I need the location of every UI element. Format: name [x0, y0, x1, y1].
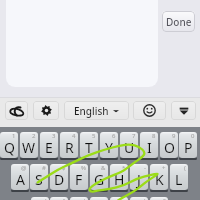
button[interactable]: & — [90, 164, 108, 190]
staticText: A — [16, 170, 25, 189]
button[interactable]: English — [64, 101, 129, 120]
staticText: 9 — [172, 132, 176, 140]
staticText: Q — [4, 138, 15, 157]
button[interactable]: " — [50, 197, 68, 200]
staticText: E — [45, 138, 53, 157]
other: Settings — [41, 105, 52, 116]
button[interactable]: % — [70, 164, 88, 190]
button[interactable]: + — [150, 164, 168, 190]
staticText: R — [65, 138, 74, 157]
staticText: 2 — [32, 132, 36, 140]
button[interactable]: * — [110, 164, 128, 190]
staticText: 4 — [72, 132, 76, 140]
staticText: ? — [163, 197, 166, 200]
staticText: : — [104, 197, 106, 200]
staticText: O — [164, 138, 175, 157]
staticText: J — [137, 170, 141, 189]
staticText: Y — [105, 138, 113, 157]
staticText: 7 — [132, 132, 136, 140]
other: Hide keyboard — [178, 105, 190, 117]
staticText: & — [101, 164, 106, 172]
button[interactable]: / — [130, 197, 148, 200]
button[interactable]: Emoji — [133, 101, 166, 120]
staticText: H — [114, 170, 125, 189]
staticText: # — [42, 164, 46, 172]
staticText: 5 — [92, 132, 96, 140]
staticText: 3 — [52, 132, 56, 140]
button[interactable]: @ — [11, 164, 29, 190]
staticText: % — [81, 164, 86, 172]
button[interactable]: ' — [70, 197, 88, 200]
staticText: 0 — [191, 132, 195, 140]
button[interactable]: 0 — [179, 132, 197, 158]
staticText: ( — [184, 164, 186, 172]
staticText: L — [175, 170, 183, 189]
button[interactable]: 2 — [20, 132, 38, 158]
staticText: T — [85, 138, 93, 157]
staticText: Done — [166, 15, 192, 29]
staticText: $ — [62, 164, 66, 172]
button[interactable]: $ — [50, 164, 68, 190]
staticText: ' — [84, 197, 86, 200]
button[interactable]: ? — [150, 197, 168, 200]
button[interactable]: 7 — [120, 132, 138, 158]
button[interactable]: # — [30, 164, 48, 190]
staticText: 8 — [152, 132, 156, 140]
button[interactable]: Done — [162, 11, 195, 32]
button[interactable]: ( — [170, 164, 188, 190]
staticText: U — [124, 138, 135, 157]
button[interactable]: 9 — [160, 132, 178, 158]
button[interactable]: ; — [110, 197, 128, 200]
staticText: ; — [124, 197, 126, 200]
staticText: 1 — [12, 132, 16, 140]
other: Emoji — [143, 104, 156, 117]
button[interactable]: 4 — [60, 132, 78, 158]
button[interactable]: 5 — [80, 132, 98, 158]
button[interactable]: 3 — [40, 132, 58, 158]
staticText: I — [147, 138, 152, 157]
button[interactable]: 1 — [0, 132, 18, 158]
staticText: F — [75, 170, 83, 189]
staticText: * — [122, 164, 126, 172]
staticText: K — [155, 170, 164, 189]
button[interactable]: Hide keyboard — [171, 101, 196, 120]
staticText: W — [22, 138, 36, 157]
button[interactable]: - — [130, 164, 148, 190]
button[interactable]: 6 — [100, 132, 118, 158]
staticText: / — [143, 197, 146, 200]
staticText: G — [94, 170, 105, 189]
staticText: - — [144, 164, 146, 172]
staticText: ! — [45, 197, 47, 200]
staticText: P — [184, 138, 193, 157]
button[interactable]: Swype — [5, 101, 28, 120]
button[interactable]: ! — [31, 197, 49, 200]
staticText: English — [74, 104, 109, 118]
staticText: 6 — [112, 132, 116, 140]
staticText: + — [162, 164, 166, 172]
staticText: @ — [21, 164, 27, 172]
other: Swype — [9, 103, 25, 119]
button[interactable]: 8 — [140, 132, 158, 158]
staticText: " — [63, 197, 66, 200]
button[interactable]: Settings — [33, 101, 59, 120]
button[interactable]: : — [90, 197, 108, 200]
staticText: D — [54, 170, 65, 189]
staticText: S — [35, 170, 43, 189]
